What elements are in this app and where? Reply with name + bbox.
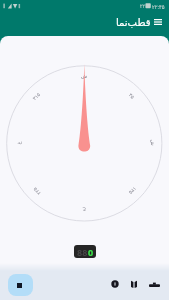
staticText: 88 <box>77 246 88 258</box>
staticText: ۱۳۵ <box>127 186 138 196</box>
staticText: ۴۵ <box>128 92 136 100</box>
staticText: 0 <box>88 246 94 258</box>
staticText: ۲۲:۴۵ <box>152 3 165 10</box>
staticText: ۲۲۵ <box>31 186 42 196</box>
button[interactable]: Level <box>147 277 161 291</box>
button[interactable]: Info <box>108 277 122 291</box>
button[interactable]: قطب‌نما <box>116 17 151 29</box>
staticText: ۲۲ <box>140 4 145 9</box>
button[interactable]: Stop <box>8 274 33 296</box>
button[interactable]: Heading <box>74 245 96 258</box>
button[interactable]: Map <box>127 277 141 291</box>
staticText: ج <box>82 208 86 214</box>
staticText: ۳۱۵ <box>31 91 42 101</box>
staticText: ش <box>81 73 88 79</box>
staticText: غ <box>14 141 20 144</box>
button[interactable]: Menu <box>150 14 165 29</box>
staticText: ش <box>149 139 155 146</box>
